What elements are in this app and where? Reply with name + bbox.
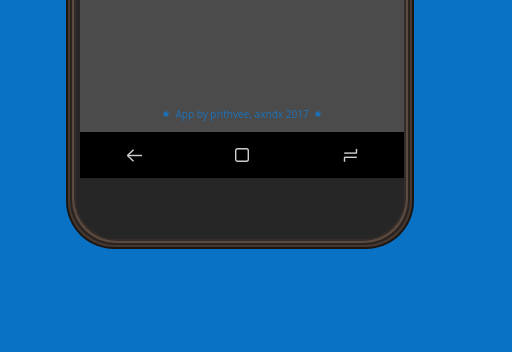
- button[interactable]: Back: [80, 132, 188, 178]
- button[interactable]: App by prithvee, axndx 2017: [162, 107, 322, 121]
- button[interactable]: Home: [188, 132, 296, 178]
- staticText: App by prithvee, axndx 2017: [175, 107, 309, 121]
- button[interactable]: Recents: [296, 132, 404, 178]
